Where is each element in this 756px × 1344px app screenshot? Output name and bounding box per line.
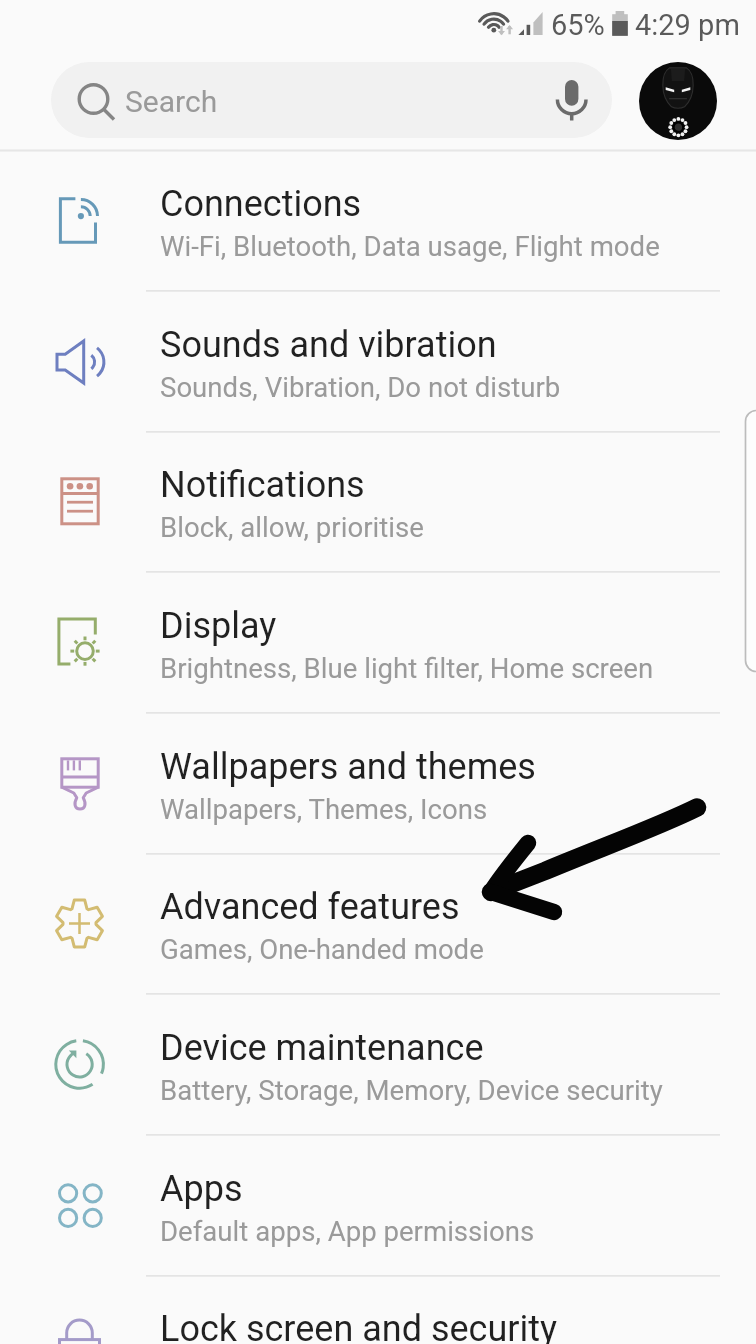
staticText: Notifications	[160, 464, 720, 506]
button[interactable]: Apps	[0, 1134, 756, 1275]
staticText: Apps	[160, 1168, 720, 1210]
staticText: Connections	[160, 183, 720, 225]
staticText: Sounds, Vibration, Do not disturb	[160, 371, 730, 403]
button[interactable]: Search	[51, 62, 612, 138]
button[interactable]: Wallpapers and themes	[0, 712, 756, 853]
staticText: Sounds and vibration	[160, 324, 720, 366]
staticText: Advanced features	[160, 886, 720, 928]
button[interactable]: Profile	[639, 62, 717, 140]
button[interactable]: Sounds and vibration	[0, 290, 756, 431]
button[interactable]: Device maintenance	[0, 993, 756, 1134]
button[interactable]: Advanced features	[0, 852, 756, 993]
staticText: Default apps, App permissions	[160, 1215, 730, 1247]
staticText: Search	[125, 84, 218, 119]
staticText: 4:29 pm	[635, 8, 740, 42]
staticText: 65%	[551, 8, 605, 42]
button[interactable]: Lock screen and security	[0, 1274, 756, 1344]
staticText: Games, One-handed mode	[160, 933, 730, 965]
staticText: Lock screen and security	[160, 1308, 720, 1344]
staticText: Display	[160, 605, 720, 647]
button[interactable]: Connections	[0, 149, 756, 290]
staticText: Wi-Fi, Bluetooth, Data usage, Flight mod…	[160, 230, 730, 262]
staticText: Block, allow, prioritise	[160, 511, 730, 543]
staticText: Wallpapers, Themes, Icons	[160, 793, 730, 825]
staticText: Device maintenance	[160, 1027, 720, 1069]
button[interactable]: Display	[0, 571, 756, 712]
staticText: Brightness, Blue light filter, Home scre…	[160, 652, 730, 684]
button[interactable]: Notifications	[0, 430, 756, 571]
staticText: Wallpapers and themes	[160, 746, 720, 788]
staticText: Battery, Storage, Memory, Device securit…	[160, 1074, 730, 1106]
button[interactable]: Scroll	[744, 409, 756, 673]
